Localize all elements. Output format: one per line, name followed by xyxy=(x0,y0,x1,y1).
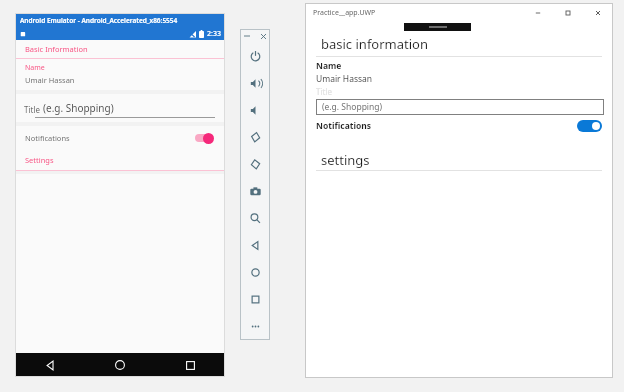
button[interactable]: Notifications xyxy=(15,126,225,150)
button[interactable]: Power xyxy=(240,42,270,70)
staticText: Notifications xyxy=(25,133,193,143)
staticText: Umair Hassan xyxy=(316,73,373,85)
staticText: Title xyxy=(316,86,332,97)
staticText: settings xyxy=(321,151,370,169)
button[interactable]: Overview xyxy=(240,286,270,313)
button[interactable]: Volume up xyxy=(240,70,270,97)
button[interactable]: Recent apps xyxy=(155,353,225,377)
staticText: Umair Hassan xyxy=(25,75,75,85)
staticText: Name xyxy=(316,60,342,72)
button[interactable]: Home xyxy=(240,259,270,286)
staticText: basic information xyxy=(321,35,428,53)
button[interactable]: Zoom xyxy=(240,205,270,232)
button[interactable]: Volume down xyxy=(240,97,270,124)
button[interactable]: Rotate right xyxy=(240,151,270,178)
button[interactable]: Maximize xyxy=(553,3,583,22)
staticText: Basic Information xyxy=(25,44,88,54)
staticText: Android Emulator - Android_Accelerated_x… xyxy=(20,16,178,25)
staticText: Notifications xyxy=(316,120,577,132)
staticText: (e.g. Shopping) xyxy=(43,101,114,115)
staticText: Title xyxy=(24,104,43,115)
button[interactable]: More xyxy=(240,313,270,340)
button[interactable]: Close xyxy=(257,30,269,42)
button[interactable]: Notifications xyxy=(305,118,613,133)
button[interactable]: Notifications toggle xyxy=(577,120,602,132)
button[interactable]: Home xyxy=(85,353,155,377)
button[interactable]: Notifications toggle xyxy=(193,132,215,144)
staticText: Settings xyxy=(25,155,54,165)
button[interactable]: (e.g. Shopping) xyxy=(316,99,604,115)
button[interactable]: Minimize xyxy=(523,3,553,22)
button[interactable]: Back xyxy=(240,232,270,259)
button[interactable]: Minimize xyxy=(241,30,253,42)
button[interactable]: Back xyxy=(15,353,85,377)
button[interactable]: Settings xyxy=(15,150,225,170)
button[interactable]: Close xyxy=(583,3,613,22)
staticText: 2:33 xyxy=(207,29,221,39)
button[interactable]: Rotate left xyxy=(240,124,270,151)
staticText: Practice__app.UWP xyxy=(313,8,376,18)
button[interactable]: Screenshot xyxy=(240,178,270,205)
staticText: (e.g. Shopping) xyxy=(322,101,383,113)
staticText: Name xyxy=(25,63,45,73)
